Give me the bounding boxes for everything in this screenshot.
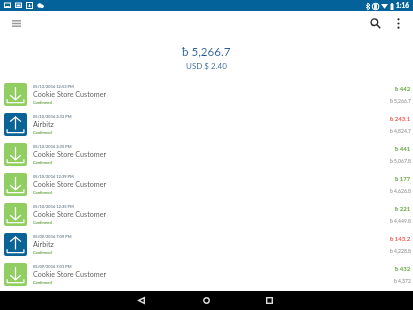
staticText: Airbitz: [33, 240, 54, 249]
staticText: ƀ 4,626.8: [390, 188, 411, 194]
staticText: Confirmed: [33, 160, 52, 165]
button[interactable]: 05/09/2016 7:09 PM: [0, 233, 413, 263]
button[interactable]: Recent apps: [249, 291, 289, 310]
button[interactable]: 05/10/2016 2:32 PM: [0, 113, 413, 143]
button[interactable]: 05/10/2016 2:35 PM: [0, 143, 413, 173]
staticText: 05/09/2016 7:09 PM: [33, 234, 72, 239]
staticText: ƀ 441: [395, 145, 411, 152]
button[interactable]: 05/10/2016 12:35 PM: [0, 203, 413, 233]
staticText: Confirmed: [33, 280, 52, 285]
staticText: Confirmed: [33, 100, 52, 105]
staticText: 05/10/2016 12:35 PM: [33, 204, 74, 209]
button[interactable]: More options: [387, 12, 409, 34]
staticText: ƀ 432: [395, 265, 411, 272]
button[interactable]: Menu: [4, 11, 28, 35]
staticText: Airbitz: [33, 120, 54, 129]
staticText: 05/13/2016 12:53 PM: [33, 84, 74, 89]
staticText: Confirmed: [33, 250, 52, 255]
staticText: ƀ 4,372: [394, 278, 411, 284]
staticText: 05/10/2016 2:35 PM: [33, 144, 72, 149]
staticText: ƀ 177: [395, 175, 411, 182]
staticText: ƀ 4,449.8: [390, 218, 411, 224]
staticText: ƀ 5,067.8: [390, 158, 411, 164]
button[interactable]: Home: [186, 291, 226, 310]
staticText: Cookie Store Customer: [33, 180, 107, 189]
staticText: Cookie Store Customer: [33, 270, 107, 279]
staticText: 05/10/2016 12:39 PM: [33, 174, 74, 179]
staticText: Cookie Store Customer: [33, 90, 107, 99]
staticText: 1:16: [396, 2, 409, 10]
staticText: Confirmed: [33, 190, 52, 195]
staticText: Confirmed: [33, 130, 52, 135]
staticText: ƀ 5,266.7: [182, 45, 231, 59]
button[interactable]: Back: [121, 291, 161, 310]
staticText: ƀ 143.2: [390, 235, 411, 242]
staticText: USD $ 2.40: [186, 61, 227, 71]
staticText: Cookie Store Customer: [33, 210, 107, 219]
staticText: ƀ 4,228.8: [390, 248, 411, 254]
staticText: ƀ 221: [395, 205, 411, 212]
button[interactable]: 05/10/2016 12:39 PM: [0, 173, 413, 203]
staticText: ƀ 4,824.7: [390, 128, 411, 134]
button[interactable]: Search: [367, 15, 384, 32]
staticText: ƀ 442: [395, 85, 411, 92]
button[interactable]: 05/13/2016 12:53 PM: [0, 83, 413, 113]
staticText: ƀ 243.1: [390, 115, 411, 122]
button[interactable]: 05/09/2016 7:01 PM: [0, 263, 413, 291]
staticText: ƀ 5,266.7: [390, 98, 411, 104]
staticText: Confirmed: [33, 220, 52, 225]
staticText: 05/09/2016 7:01 PM: [33, 264, 72, 269]
staticText: Cookie Store Customer: [33, 150, 107, 159]
staticText: 05/10/2016 2:32 PM: [33, 114, 72, 119]
